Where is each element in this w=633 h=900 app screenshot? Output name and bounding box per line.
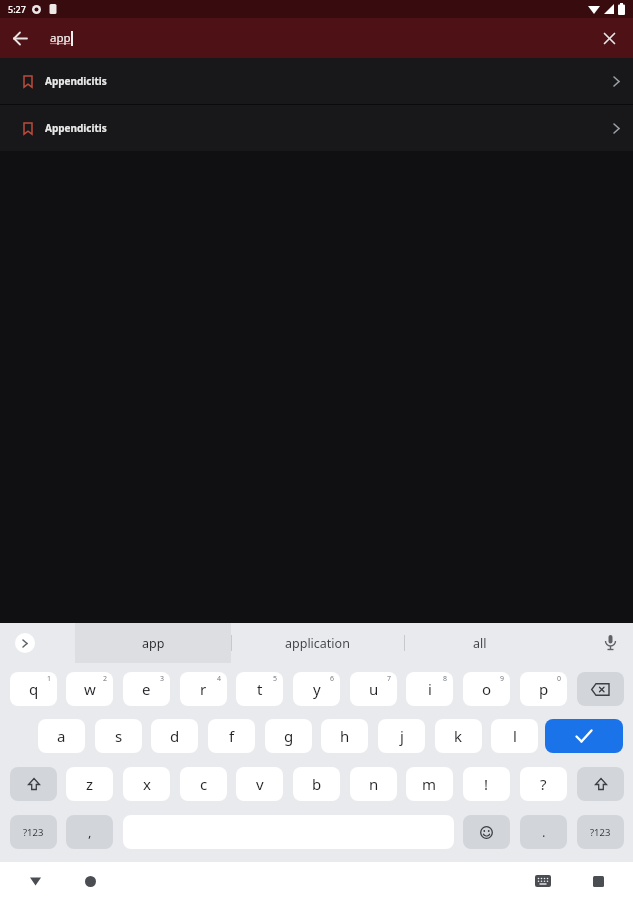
staticText: l <box>513 726 517 746</box>
staticText: 3 <box>160 674 165 684</box>
button[interactable]: r <box>180 672 227 706</box>
button[interactable]: ?123 <box>577 815 624 849</box>
button[interactable]: application <box>231 623 404 663</box>
button[interactable]: d <box>151 719 198 753</box>
button[interactable]: app <box>75 623 231 663</box>
staticText: Appendicitis <box>45 121 107 135</box>
staticText: Appendicitis <box>45 74 107 88</box>
staticText: ? <box>540 774 547 794</box>
staticText: s <box>115 726 123 746</box>
button[interactable] <box>10 767 57 801</box>
staticText: 1 <box>47 674 52 684</box>
button[interactable]: s <box>95 719 142 753</box>
button[interactable]: i <box>406 672 453 706</box>
button[interactable]: t <box>236 672 283 706</box>
button[interactable]: x <box>123 767 170 801</box>
staticText: ?123 <box>590 826 611 839</box>
button[interactable]: , <box>66 815 113 849</box>
button[interactable] <box>577 672 624 706</box>
button[interactable]: g <box>265 719 312 753</box>
button[interactable]: e <box>123 672 170 706</box>
button[interactable] <box>577 767 624 801</box>
staticText: 5:27 <box>8 3 26 15</box>
staticText: m <box>422 774 437 794</box>
button[interactable] <box>589 18 629 58</box>
staticText: 0 <box>557 674 562 684</box>
staticText: u <box>369 679 379 699</box>
staticText: e <box>142 679 151 699</box>
button[interactable] <box>15 633 35 653</box>
button[interactable]: w <box>66 672 113 706</box>
staticText: 6 <box>330 674 335 684</box>
button[interactable]: ? <box>520 767 567 801</box>
staticText: w <box>84 679 96 699</box>
button[interactable]: a <box>38 719 85 753</box>
staticText: j <box>400 726 404 746</box>
button[interactable]: y <box>293 672 340 706</box>
staticText: a <box>57 726 66 746</box>
staticText: o <box>482 679 492 699</box>
staticText: 4 <box>217 674 222 684</box>
button[interactable]: ! <box>463 767 510 801</box>
button[interactable] <box>545 719 623 753</box>
staticText: 7 <box>387 674 392 684</box>
button[interactable]: l <box>491 719 538 753</box>
staticText: app <box>50 30 71 46</box>
button[interactable]: . <box>520 815 567 849</box>
staticText: n <box>369 774 379 794</box>
staticText: y <box>313 679 321 699</box>
staticText: q <box>29 679 39 699</box>
staticText: f <box>229 726 235 746</box>
staticText: g <box>284 726 294 746</box>
button[interactable] <box>22 868 48 894</box>
staticText: 2 <box>103 674 108 684</box>
button[interactable]: u <box>350 672 397 706</box>
staticText: c <box>200 774 208 794</box>
button[interactable] <box>585 868 611 894</box>
staticText: 8 <box>443 674 448 684</box>
button[interactable]: ?123 <box>10 815 57 849</box>
staticText: b <box>312 774 322 794</box>
staticText: app <box>142 635 165 652</box>
button[interactable]: Appendicitis <box>0 105 633 151</box>
staticText: , <box>88 823 92 841</box>
button[interactable]: v <box>236 767 283 801</box>
button[interactable]: k <box>435 719 482 753</box>
staticText: p <box>539 679 549 699</box>
button[interactable]: j <box>378 719 425 753</box>
button[interactable]: q <box>10 672 57 706</box>
button[interactable] <box>530 868 556 894</box>
button[interactable]: n <box>350 767 397 801</box>
staticText: x <box>143 774 151 794</box>
button[interactable]: f <box>208 719 255 753</box>
staticText: ?123 <box>23 826 44 839</box>
button[interactable]: z <box>66 767 113 801</box>
button[interactable]: b <box>293 767 340 801</box>
button[interactable]: c <box>180 767 227 801</box>
button[interactable] <box>0 18 40 58</box>
staticText: application <box>285 635 350 652</box>
button[interactable] <box>463 815 510 849</box>
staticText: i <box>428 679 432 699</box>
staticText: z <box>86 774 94 794</box>
staticText: k <box>454 726 463 746</box>
button[interactable]: m <box>406 767 453 801</box>
button[interactable] <box>77 868 103 894</box>
staticText: t <box>257 679 263 699</box>
staticText: . <box>542 823 546 841</box>
staticText: d <box>170 726 180 746</box>
button[interactable]: p <box>520 672 567 706</box>
staticText: h <box>340 726 350 746</box>
staticText: r <box>200 679 207 699</box>
staticText: 5 <box>273 674 278 684</box>
button[interactable] <box>598 631 622 655</box>
button[interactable]: o <box>463 672 510 706</box>
staticText: all <box>473 635 487 652</box>
button[interactable]: all <box>404 623 556 663</box>
button[interactable]: h <box>321 719 368 753</box>
staticText: v <box>256 774 264 794</box>
staticText: 9 <box>500 674 505 684</box>
staticText: ! <box>484 774 489 794</box>
button[interactable]: Appendicitis <box>0 58 633 104</box>
